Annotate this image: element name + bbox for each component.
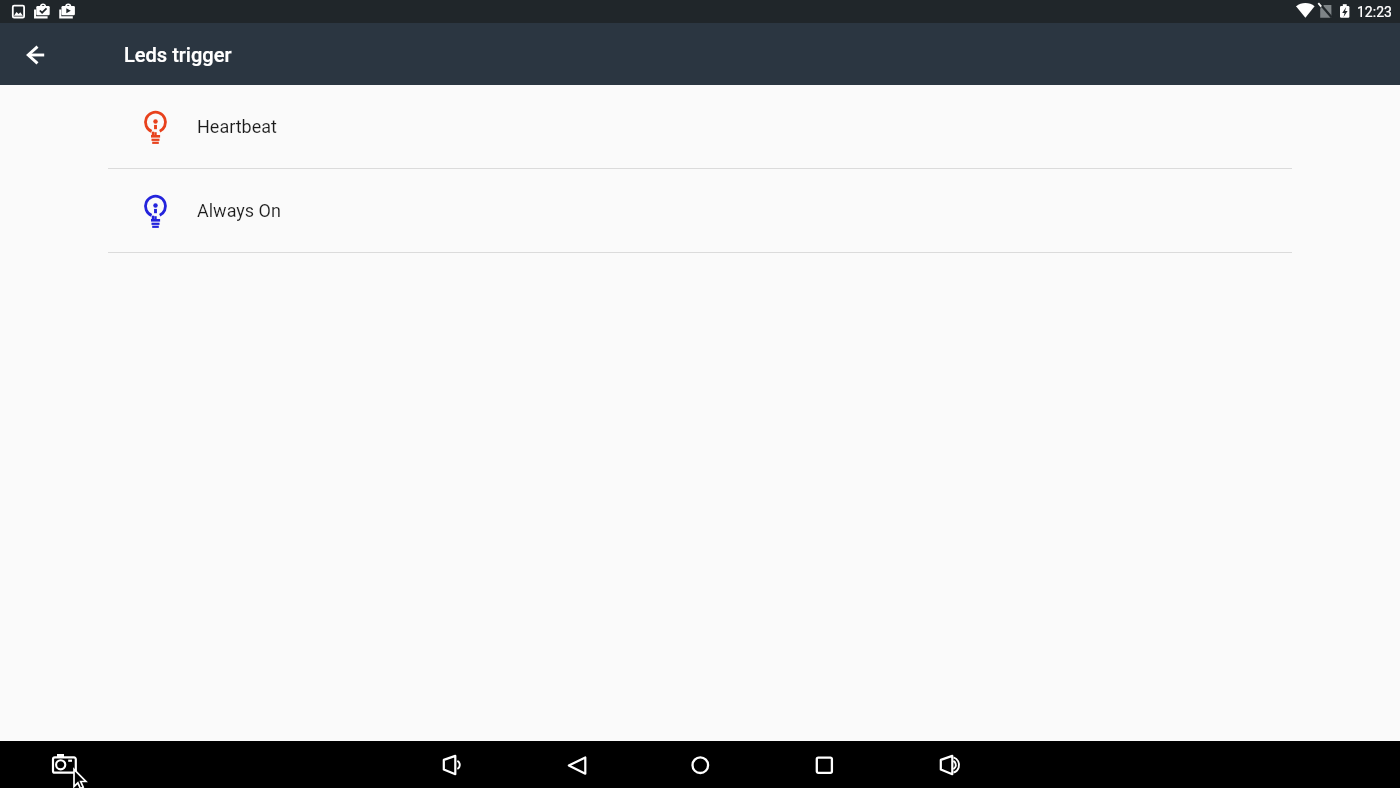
staticText: Leds trigger [124, 43, 232, 66]
button[interactable] [553, 741, 601, 788]
staticText: 12:23 [1357, 4, 1392, 20]
button[interactable]: Heartbeat [0, 85, 1400, 168]
button[interactable] [428, 741, 476, 788]
button[interactable] [676, 741, 724, 788]
button[interactable] [40, 741, 88, 788]
button[interactable]: Always On [0, 169, 1400, 252]
button[interactable] [925, 741, 973, 788]
button[interactable] [800, 741, 848, 788]
staticText: Heartbeat [197, 116, 277, 137]
button[interactable] [12, 31, 59, 78]
staticText: Always On [197, 200, 281, 221]
